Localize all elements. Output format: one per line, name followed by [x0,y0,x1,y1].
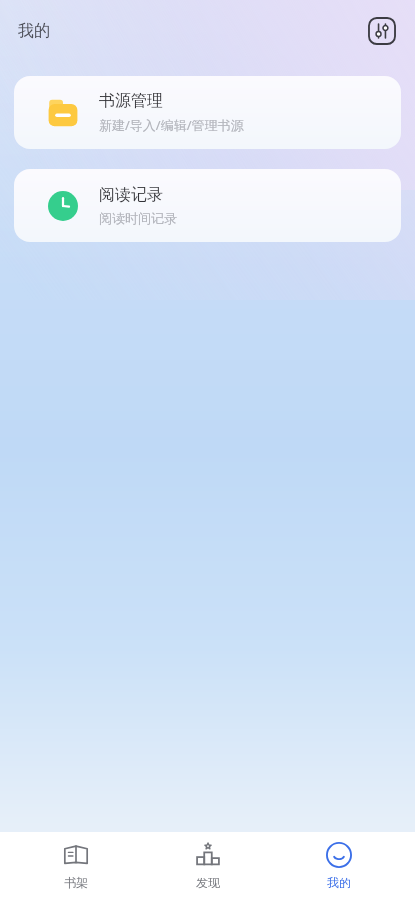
staticText: 书源管理 [99,91,163,111]
staticText: 阅读时间记录 [99,210,177,226]
staticText: 我的 [18,21,50,41]
button[interactable]: 书源管理 [14,76,401,149]
button[interactable]: 设置 [363,12,401,50]
staticText: 发现 [196,875,220,890]
button[interactable]: 我的 [284,842,394,890]
staticText: 阅读记录 [99,185,163,205]
button[interactable]: 发现 [153,842,263,890]
staticText: 书架 [64,875,88,890]
staticText: 我的 [327,875,351,890]
staticText: 新建/导入/编辑/管理书源 [99,116,244,134]
button[interactable]: 阅读记录 [14,169,401,242]
button[interactable]: 书架 [21,842,131,890]
